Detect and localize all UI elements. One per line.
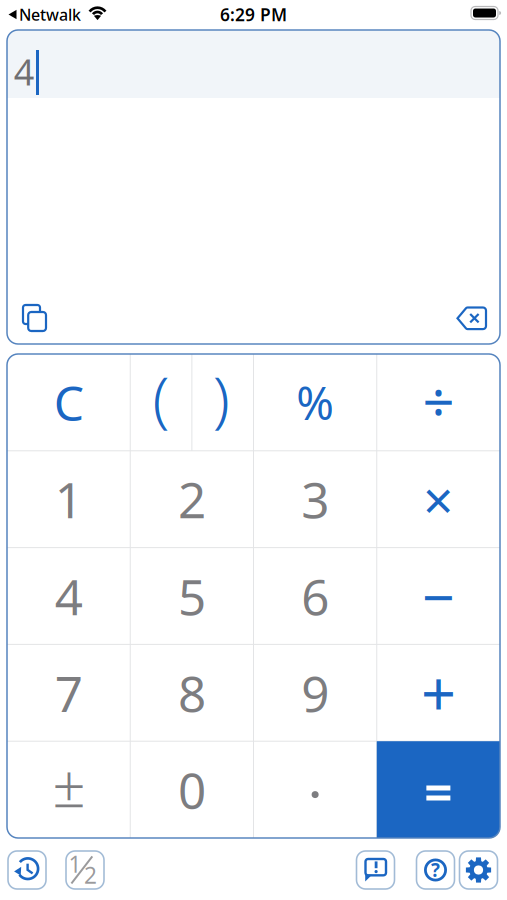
button[interactable] xyxy=(450,298,494,338)
button[interactable]: ) xyxy=(191,349,252,445)
staticText: × xyxy=(423,464,454,535)
staticText: 3 xyxy=(301,466,329,532)
staticText: + xyxy=(421,652,456,733)
staticText: 6 xyxy=(301,563,329,629)
button[interactable]: 3 xyxy=(254,451,376,547)
button[interactable]: 2 xyxy=(131,451,253,547)
button[interactable]: + xyxy=(377,645,499,741)
button[interactable]: 7 xyxy=(8,645,130,741)
staticText: 4 xyxy=(55,563,83,629)
staticText: 4 xyxy=(14,48,35,95)
staticText: ÷ xyxy=(422,364,454,438)
staticText: 8 xyxy=(178,660,206,725)
button[interactable]: ( xyxy=(131,349,192,445)
button[interactable]: × xyxy=(377,451,499,547)
staticText: 6:29 PM xyxy=(220,3,287,26)
staticText: ( xyxy=(153,356,170,438)
staticText: % xyxy=(296,372,334,432)
button[interactable]: ± xyxy=(8,737,130,833)
button[interactable]: 1 xyxy=(8,451,130,547)
button[interactable]: 5 xyxy=(131,548,253,644)
staticText: C xyxy=(54,370,84,434)
button[interactable]: 1 xyxy=(66,851,104,889)
staticText: 7 xyxy=(55,660,83,725)
button[interactable] xyxy=(254,742,376,838)
button[interactable]: C xyxy=(8,354,130,450)
button[interactable] xyxy=(356,851,394,889)
button[interactable] xyxy=(0,0,507,900)
staticText: 5 xyxy=(178,563,206,629)
button[interactable]: ÷ xyxy=(377,353,499,449)
staticText: 9 xyxy=(301,660,329,725)
staticText: − xyxy=(422,558,455,634)
staticText: Netwalk xyxy=(19,4,81,25)
staticText: 1 xyxy=(68,849,81,879)
button[interactable]: 4 xyxy=(8,548,130,644)
button[interactable] xyxy=(14,298,54,338)
staticText: 1 xyxy=(55,466,83,532)
staticText: ± xyxy=(52,746,85,823)
button[interactable]: 9 xyxy=(254,645,376,741)
button[interactable]: 0 xyxy=(131,742,253,838)
staticText: 2 xyxy=(84,860,97,890)
button[interactable]: 8 xyxy=(131,645,253,741)
staticText: ) xyxy=(213,356,230,438)
staticText: 2 xyxy=(178,466,206,532)
staticText: ? xyxy=(431,857,440,882)
button[interactable]: ? xyxy=(416,851,454,889)
button[interactable]: % xyxy=(254,354,376,450)
button[interactable] xyxy=(8,851,46,889)
button[interactable]: 6 xyxy=(254,548,376,644)
staticText: 0 xyxy=(178,757,206,822)
button[interactable] xyxy=(459,851,497,889)
button[interactable]: − xyxy=(377,548,499,644)
